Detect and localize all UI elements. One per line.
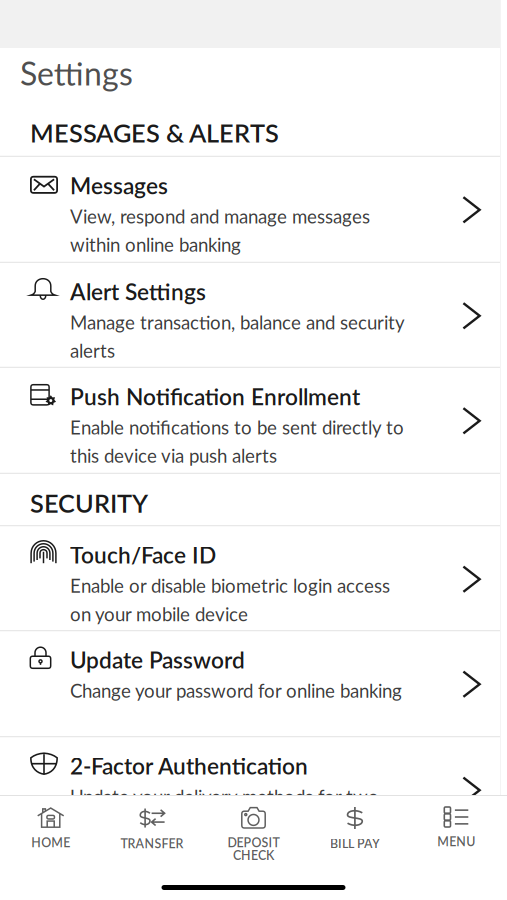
staticText: HOME [31, 835, 70, 850]
staticText: TRANSFER [121, 836, 184, 851]
staticText: alerts [70, 339, 115, 362]
button[interactable]: Touch/Face ID [0, 526, 500, 630]
staticText: factor authentication [70, 814, 240, 836]
button[interactable]: Bill Pay [304, 796, 406, 900]
staticText: 2-Factor Authentication [70, 752, 308, 779]
button[interactable]: Update Password [0, 631, 500, 736]
button[interactable]: 2-Factor Authentication [0, 737, 500, 842]
staticText: Update Password [70, 646, 245, 673]
staticText: within online banking [70, 233, 241, 256]
staticText: this device via push alerts [70, 444, 277, 467]
staticText: Update your delivery methods for two- [70, 785, 386, 808]
staticText: View, respond and manage messages [70, 205, 370, 227]
staticText: BILL PAY [330, 836, 380, 851]
staticText: CHECK [233, 848, 274, 863]
staticText: Enable or disable biometric login access [70, 574, 390, 597]
button[interactable]: Deposit Check [203, 796, 304, 900]
staticText: Messages [70, 172, 168, 199]
staticText: on your mobile device [70, 603, 248, 625]
button[interactable]: Transfer [101, 796, 203, 900]
staticText: SECURITY [30, 488, 148, 518]
button[interactable]: Alert Settings [0, 263, 500, 367]
staticText: Enable notifications to be sent directly… [70, 416, 404, 438]
staticText: Push Notification Enrollment [70, 383, 360, 410]
staticText: MESSAGES & ALERTS [30, 117, 279, 148]
staticText: Alert Settings [70, 278, 206, 305]
staticText: Settings [20, 54, 133, 92]
staticText: DEPOSIT [227, 835, 279, 850]
staticText: Manage transaction, balance and security [70, 311, 405, 333]
button[interactable]: Home [0, 796, 101, 900]
staticText: Change your password for online banking [70, 679, 402, 702]
button[interactable]: Messages [0, 157, 500, 262]
button[interactable]: Menu [406, 796, 507, 900]
button[interactable]: Push Notification Enrollment [0, 368, 500, 473]
staticText: Touch/Face ID [70, 541, 216, 568]
staticText: MENU [437, 834, 475, 849]
